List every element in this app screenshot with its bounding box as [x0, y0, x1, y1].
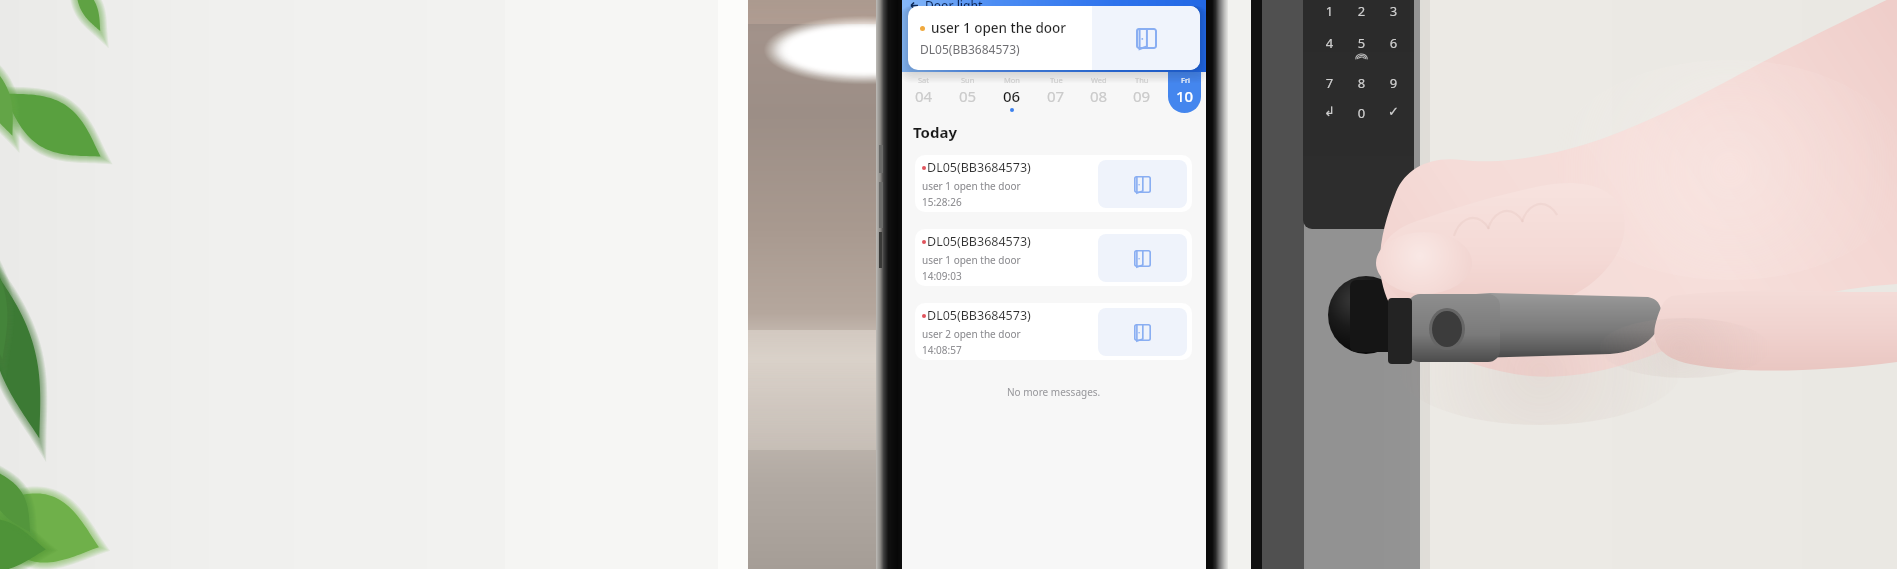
- staticText: 6: [1386, 34, 1401, 52]
- button[interactable]: Door: [908, 6, 1200, 70]
- button[interactable]: Door event: [1098, 160, 1187, 208]
- staticText: user 2 open the door: [922, 327, 1021, 341]
- staticText: 09: [1133, 86, 1151, 106]
- button[interactable]: Thu: [1125, 72, 1158, 113]
- button[interactable]: Back: [909, 0, 983, 13]
- staticText: 7: [1322, 74, 1337, 92]
- staticText: DL05(BB3684573): [927, 159, 1031, 176]
- staticText: Mon: [1004, 75, 1020, 85]
- staticText: Fri: [1181, 75, 1190, 85]
- staticText: 04: [915, 86, 933, 106]
- staticText: 4: [1322, 34, 1337, 52]
- button[interactable]: Fri: [1168, 72, 1201, 113]
- button[interactable]: DL05(BB3684573): [915, 303, 1192, 360]
- staticText: 07: [1047, 86, 1065, 106]
- button[interactable]: Door: [1092, 6, 1200, 70]
- staticText: 3: [1386, 2, 1401, 20]
- other: Back: [909, 0, 920, 11]
- button[interactable]: DL05(BB3684573): [915, 229, 1192, 286]
- staticText: 14:09:03: [922, 269, 962, 283]
- staticText: user 1 open the door: [922, 253, 1021, 267]
- staticText: 5: [1354, 34, 1369, 52]
- button[interactable]: Wed: [1082, 72, 1115, 113]
- staticText: 15:28:26: [922, 195, 962, 209]
- staticText: 2: [1354, 2, 1369, 20]
- staticText: 9: [1386, 74, 1401, 92]
- staticText: Wed: [1091, 75, 1107, 85]
- staticText: 0: [1354, 104, 1369, 122]
- staticText: Sat: [918, 75, 930, 85]
- staticText: Door light: [925, 0, 983, 13]
- staticText: Today: [913, 122, 958, 142]
- staticText: Sun: [961, 75, 975, 85]
- staticText: 06: [1003, 86, 1021, 106]
- staticText: ↲: [1322, 104, 1337, 119]
- staticText: 14:08:57: [922, 343, 962, 357]
- staticText: Thu: [1135, 75, 1149, 85]
- button[interactable]: Sat: [907, 72, 941, 113]
- button[interactable]: Door event: [1098, 308, 1187, 356]
- button[interactable]: DL05(BB3684573): [915, 155, 1192, 212]
- button[interactable]: Door event: [1098, 234, 1187, 282]
- button[interactable]: Mon: [995, 72, 1029, 113]
- staticText: 08: [1090, 86, 1108, 106]
- staticText: user 1 open the door: [931, 19, 1067, 37]
- staticText: No more messages.: [1007, 385, 1101, 399]
- staticText: ✓: [1386, 104, 1401, 119]
- button[interactable]: Tue: [1039, 72, 1072, 113]
- staticText: 1: [1322, 2, 1337, 20]
- staticText: user 1 open the door: [922, 179, 1021, 193]
- staticText: DL05(BB3684573): [927, 233, 1031, 250]
- button[interactable]: Sun: [951, 72, 985, 113]
- staticText: 8: [1354, 74, 1369, 92]
- staticText: 10: [1176, 86, 1194, 106]
- staticText: DL05(BB3684573): [920, 41, 1020, 57]
- staticText: DL05(BB3684573): [927, 307, 1031, 324]
- staticText: Tue: [1050, 75, 1063, 85]
- staticText: 05: [959, 86, 977, 106]
